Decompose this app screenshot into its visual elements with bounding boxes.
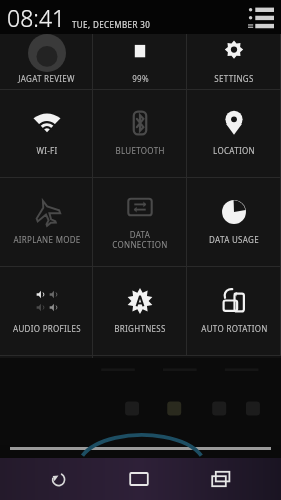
staticText: AUDIO PROFILES (13, 323, 81, 334)
staticText: SETTINGS (214, 73, 254, 84)
button[interactable]: LOCATION (187, 90, 281, 178)
staticText: AIRPLANE MODE (13, 234, 81, 245)
staticText: DATA CONNECTION (112, 229, 168, 250)
button[interactable]: Recent apps (199, 462, 243, 496)
button[interactable]: AUDIO PROFILES (0, 267, 93, 356)
staticText: 99% (132, 73, 149, 84)
staticText: DATA USAGE (209, 234, 259, 245)
staticText: AUTO ROTATION (201, 323, 268, 334)
button[interactable]: DATA USAGE (187, 178, 281, 267)
staticText: WI-FI (36, 145, 58, 156)
staticText: BRIGHTNESS (114, 323, 166, 334)
staticText: JAGAT REVIEW (18, 73, 75, 84)
button[interactable]: 99% (93, 34, 187, 90)
staticText: TUE, DECEMBER 30 (72, 19, 151, 30)
button[interactable]: DATA CONNECTION (93, 178, 187, 267)
button[interactable]: WI-FI (0, 90, 93, 178)
button[interactable]: AUTO ROTATION (187, 267, 281, 356)
staticText: BLUETOOTH (115, 145, 165, 156)
button[interactable]: BRIGHTNESS (93, 267, 187, 356)
button[interactable]: JAGAT REVIEW (0, 34, 93, 90)
button[interactable]: Notifications (248, 5, 274, 29)
button[interactable]: Back (38, 462, 78, 496)
button[interactable]: Home (117, 462, 161, 496)
staticText: 08:41 (7, 2, 66, 33)
button[interactable]: SETTINGS (187, 34, 281, 90)
button[interactable]: BLUETOOTH (93, 90, 187, 178)
button[interactable]: AIRPLANE MODE (0, 178, 93, 267)
staticText: LOCATION (213, 145, 255, 156)
